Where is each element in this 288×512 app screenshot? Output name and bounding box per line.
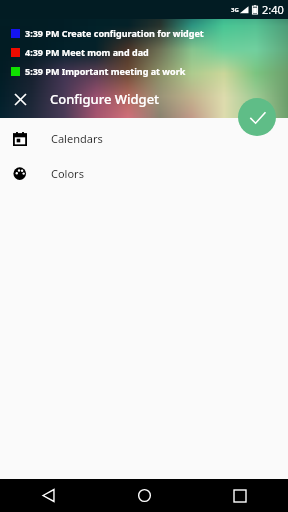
staticText: Configure Widget bbox=[50, 90, 160, 108]
staticText: Calendars bbox=[51, 131, 103, 146]
button[interactable]: Close bbox=[0, 80, 40, 118]
staticText: 5:39 PM Important meeting at work bbox=[25, 65, 186, 77]
button[interactable]: Home bbox=[124, 479, 164, 512]
button[interactable]: Back bbox=[28, 479, 68, 512]
staticText: 3:39 PM Create configuration for widget bbox=[25, 27, 204, 39]
staticText: 3G bbox=[231, 6, 239, 14]
staticText: 2:40 bbox=[262, 2, 284, 17]
button[interactable]: Calendars bbox=[0, 121, 288, 156]
button[interactable]: Done bbox=[238, 98, 276, 136]
staticText: Colors bbox=[51, 166, 84, 181]
button[interactable]: Colors bbox=[0, 156, 288, 191]
button[interactable]: Recents bbox=[220, 479, 260, 512]
staticText: 4:39 PM Meet mom and dad bbox=[25, 46, 149, 58]
